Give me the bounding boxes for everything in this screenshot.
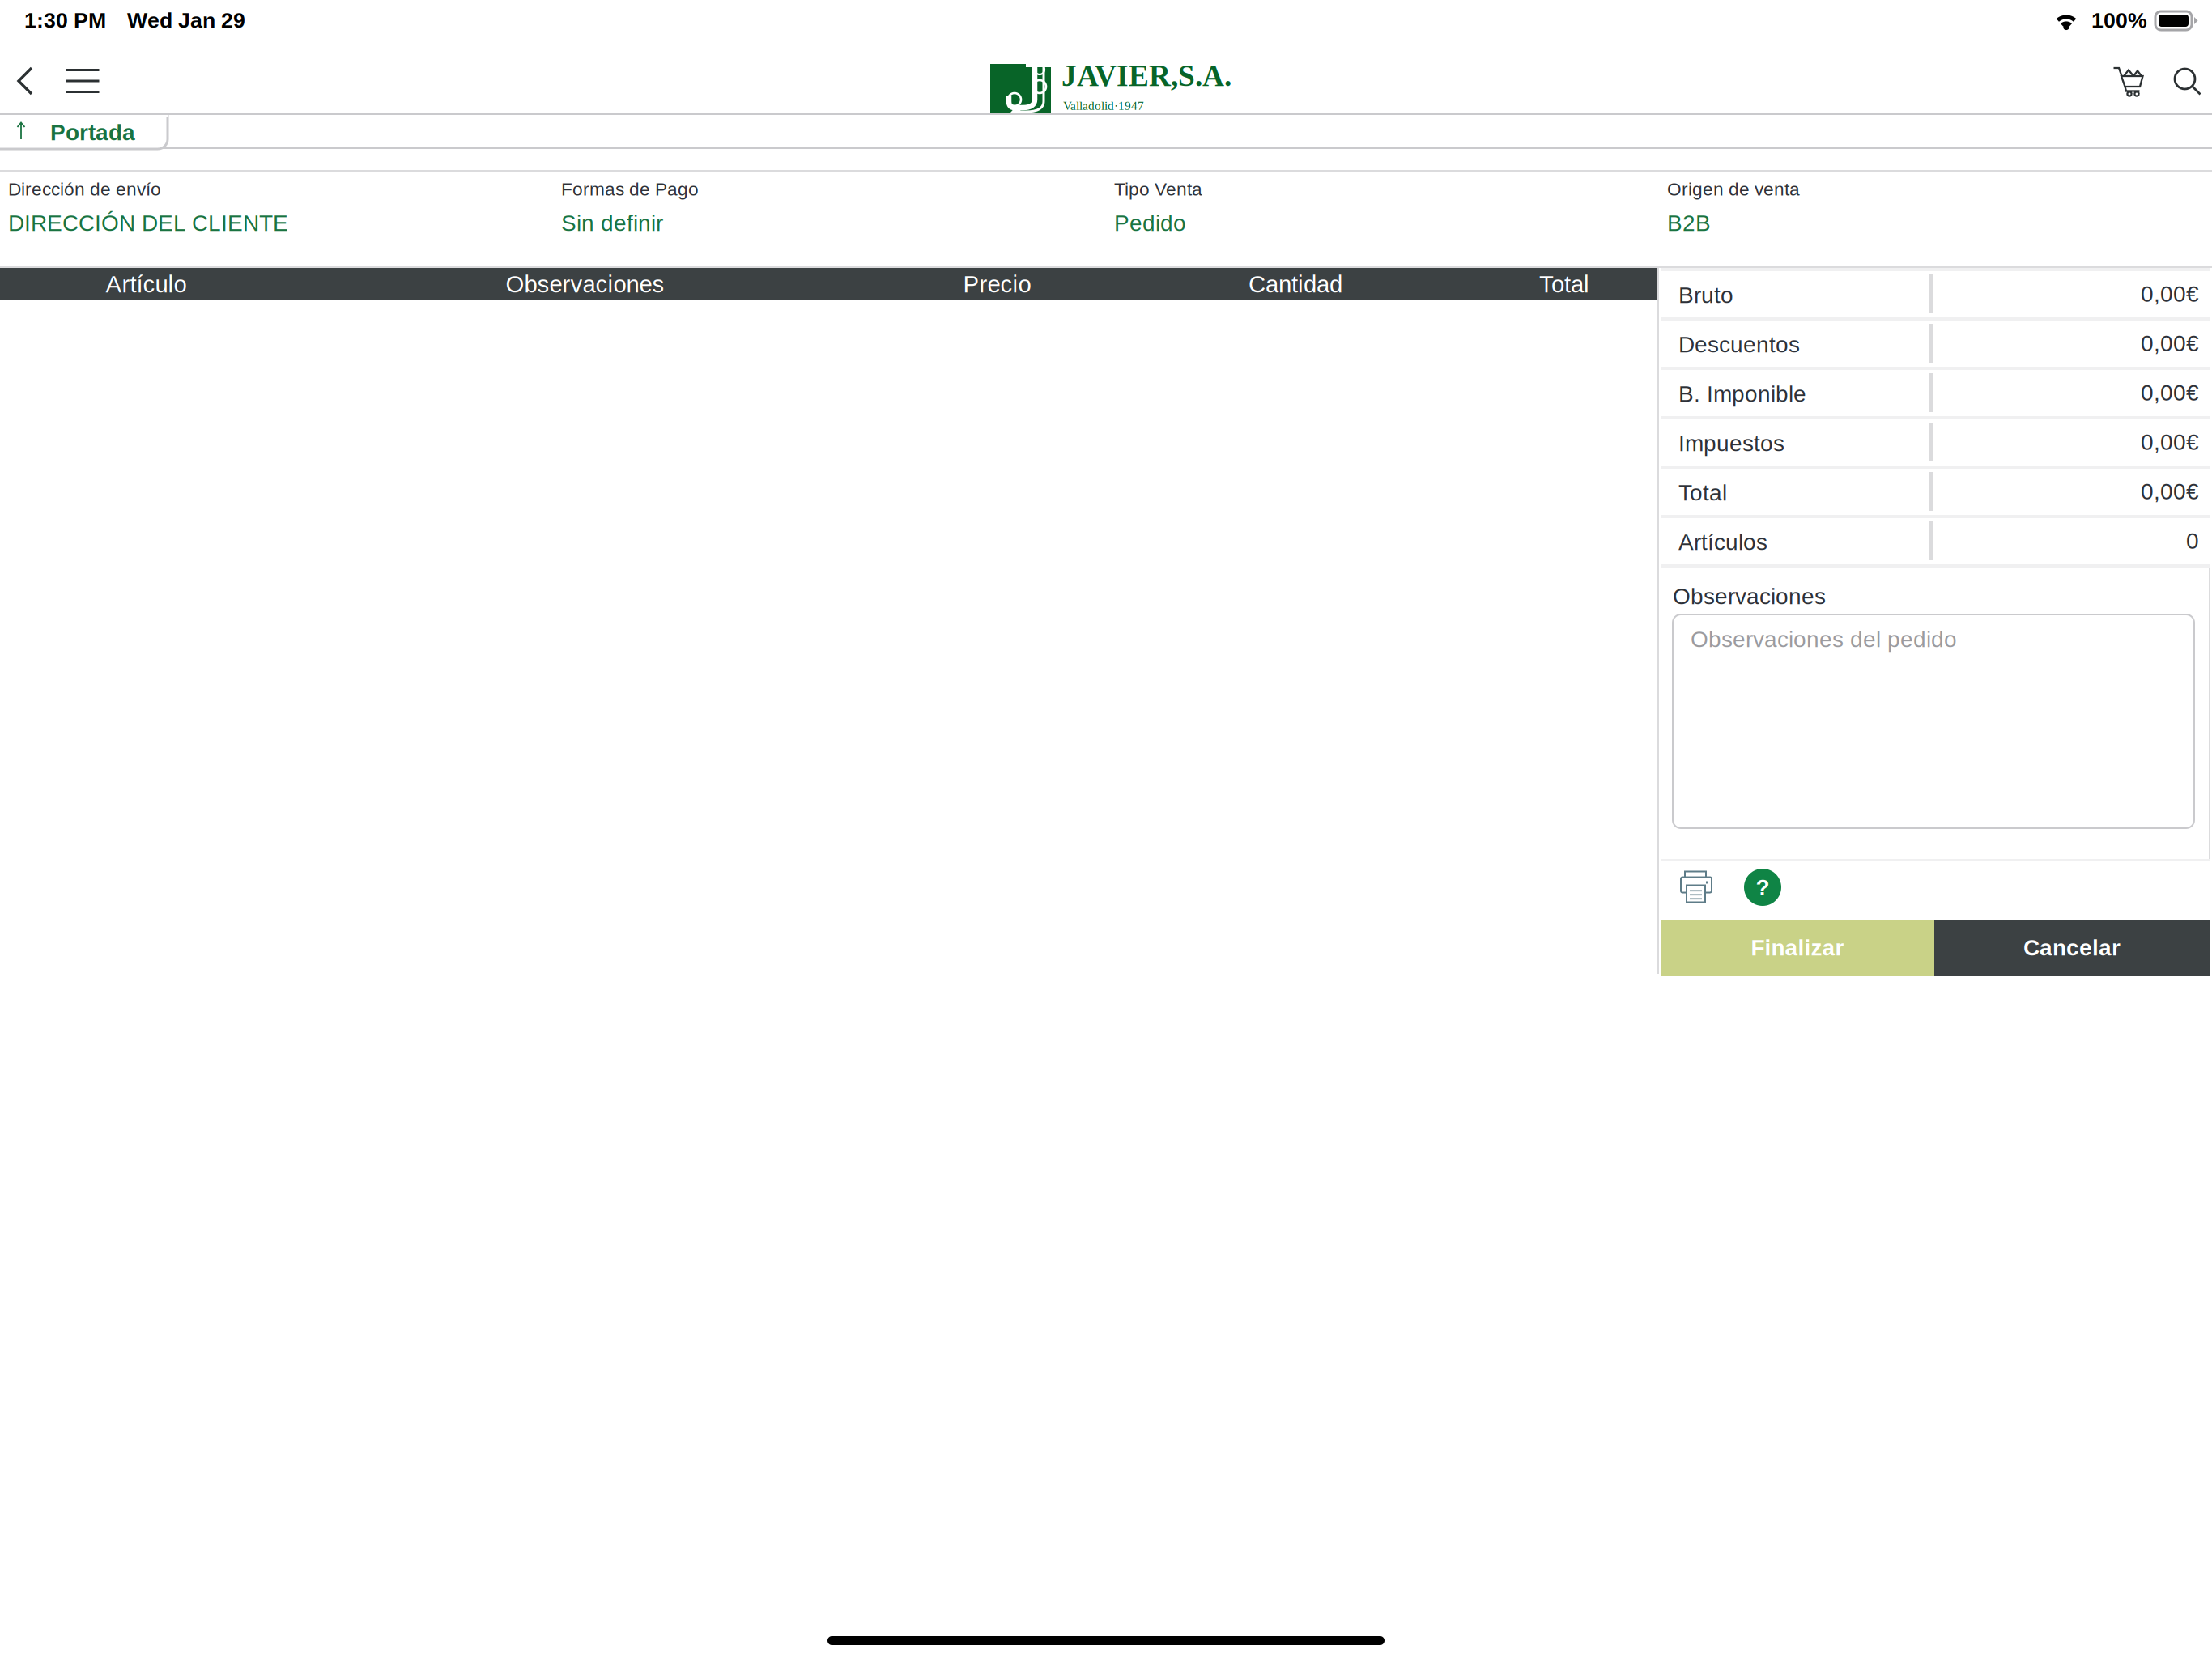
staticText: 0,00€ xyxy=(2141,331,2199,356)
button[interactable]: Print xyxy=(1668,860,1725,915)
staticText: Precio xyxy=(963,271,1031,297)
button[interactable]: Formas de Pago xyxy=(553,172,1106,266)
staticText: 0,00€ xyxy=(2141,281,2199,307)
staticText: DIRECCIÓN DEL CLIENTE xyxy=(8,210,288,236)
button[interactable]: Origen de venta xyxy=(1659,172,2212,266)
staticText: Observaciones xyxy=(1673,584,1826,609)
staticText: 0,00€ xyxy=(2141,479,2199,504)
staticText: Cantidad xyxy=(1249,271,1342,297)
button[interactable]: Portada xyxy=(0,104,168,149)
button[interactable]: Impuestos xyxy=(1661,416,2210,466)
staticText: Origen de venta xyxy=(1667,179,1800,199)
staticText: Sin definir xyxy=(561,210,663,236)
staticText: Formas de Pago xyxy=(561,179,699,199)
button[interactable]: Menu xyxy=(57,55,108,107)
button[interactable]: Observaciones del pedido xyxy=(1673,614,2194,828)
staticText: Observaciones del pedido xyxy=(1691,627,1957,652)
staticText: B2B xyxy=(1667,210,1711,236)
staticText: Total xyxy=(1678,480,1727,505)
button[interactable]: Cancelar xyxy=(1934,920,2210,976)
staticText: Finalizar xyxy=(1751,935,1844,960)
button[interactable]: Help xyxy=(1734,860,1791,915)
staticText: Observaciones xyxy=(506,271,664,297)
button[interactable]: Artículos xyxy=(1661,515,2210,564)
staticText: Descuentos xyxy=(1678,332,1800,357)
staticText: Impuestos xyxy=(1678,431,1784,456)
staticText: 0,00€ xyxy=(2141,429,2199,455)
staticText: 0 xyxy=(2186,528,2199,554)
button[interactable]: Total xyxy=(1661,466,2210,515)
staticText: Artículos xyxy=(1678,529,1767,555)
staticText: Total xyxy=(1539,271,1589,297)
staticText: Valladolid·1947 xyxy=(1063,99,1144,113)
staticText: 100% xyxy=(2091,8,2147,32)
staticText: 0,00€ xyxy=(2141,380,2199,405)
staticText: 1:30 PM xyxy=(24,8,106,32)
staticText: B. Imponible xyxy=(1678,381,1806,407)
staticText: ? xyxy=(1756,875,1770,900)
staticText: Bruto xyxy=(1678,283,1733,308)
button[interactable]: Tipo Venta xyxy=(1106,172,1659,266)
staticText: Portada xyxy=(50,120,135,145)
button[interactable]: Shopping cart xyxy=(2103,56,2155,108)
button[interactable]: Back xyxy=(2,55,49,107)
staticText: JAVIER,S.A. xyxy=(1061,59,1231,93)
staticText: Artículo xyxy=(106,271,187,297)
button[interactable]: Finalizar xyxy=(1661,920,1934,976)
staticText: Cancelar xyxy=(2023,935,2121,960)
button[interactable]: Descuentos xyxy=(1661,317,2210,367)
staticText: Pedido xyxy=(1114,210,1186,236)
button[interactable]: Dirección de envío xyxy=(0,172,553,266)
button[interactable]: Bruto xyxy=(1661,268,2210,317)
staticText: Wed Jan 29 xyxy=(127,8,245,32)
staticText: Dirección de envío xyxy=(8,179,161,199)
button[interactable]: B. Imponible xyxy=(1661,367,2210,416)
button[interactable]: Search xyxy=(2163,56,2212,108)
staticText: Tipo Venta xyxy=(1114,179,1202,199)
